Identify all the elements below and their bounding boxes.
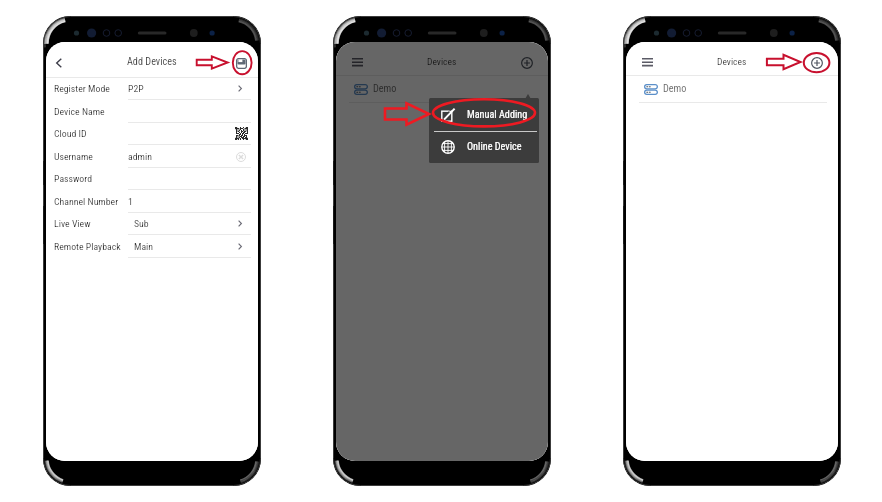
staticText: Devices [427,56,457,67]
staticText: Sub [134,218,149,229]
staticText: Register Mode [54,83,110,94]
button[interactable]: Channel Number [46,190,258,213]
button[interactable]: Menu [352,58,363,68]
button[interactable]: Add device [521,57,533,69]
staticText: 1 [128,196,133,207]
button[interactable]: Register Mode [46,77,258,100]
staticText: Main [134,241,154,252]
button[interactable]: Password [46,167,258,190]
button[interactable]: Remote Playback [46,235,258,258]
button[interactable]: Online Device [429,131,539,163]
button[interactable]: Device Name [46,100,258,123]
staticText: Demo [373,83,397,95]
staticText: Demo [663,83,687,95]
staticText: Add Devices [127,56,177,68]
staticText: P2P [128,83,144,94]
staticText: Devices [717,56,747,67]
button[interactable]: Username [46,145,258,168]
button[interactable]: Demo [626,76,838,102]
button[interactable]: Save [236,58,247,69]
staticText: Online Device [467,141,522,153]
staticText: Password [54,173,93,184]
button[interactable]: Cloud ID [46,122,258,145]
staticText: Remote Playback [54,241,121,252]
button[interactable]: Menu [642,58,653,68]
button[interactable]: Back [56,58,62,68]
staticText: Cloud ID [54,128,87,139]
button[interactable]: Manual Adding [429,98,539,131]
staticText: Manual Adding [467,109,528,121]
staticText: admin [128,151,152,162]
staticText: Device Name [54,106,105,117]
button[interactable]: Live View [46,212,258,235]
button[interactable]: Add device [811,57,823,69]
staticText: Username [54,151,93,162]
button[interactable]: Demo [336,76,548,102]
staticText: Live View [54,218,91,229]
staticText: Channel Number [54,196,119,207]
